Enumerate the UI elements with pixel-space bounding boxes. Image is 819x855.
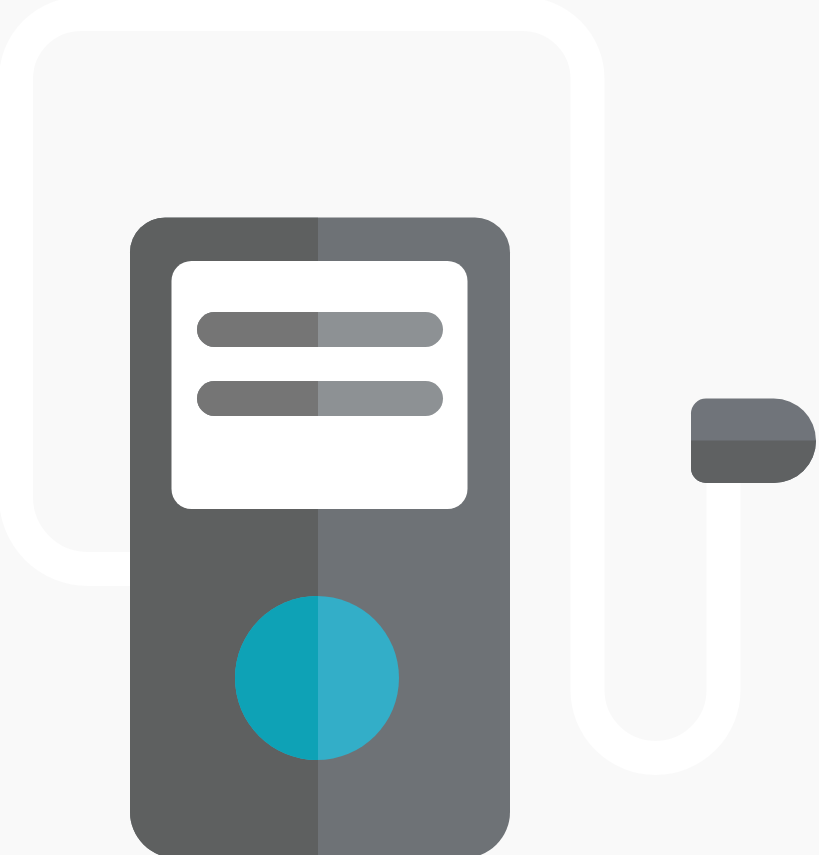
button[interactable]: Music player [130, 218, 510, 855]
button[interactable]: Play [235, 596, 399, 760]
button[interactable]: Now playing list [172, 261, 468, 509]
button[interactable]: Earbud [691, 399, 816, 484]
